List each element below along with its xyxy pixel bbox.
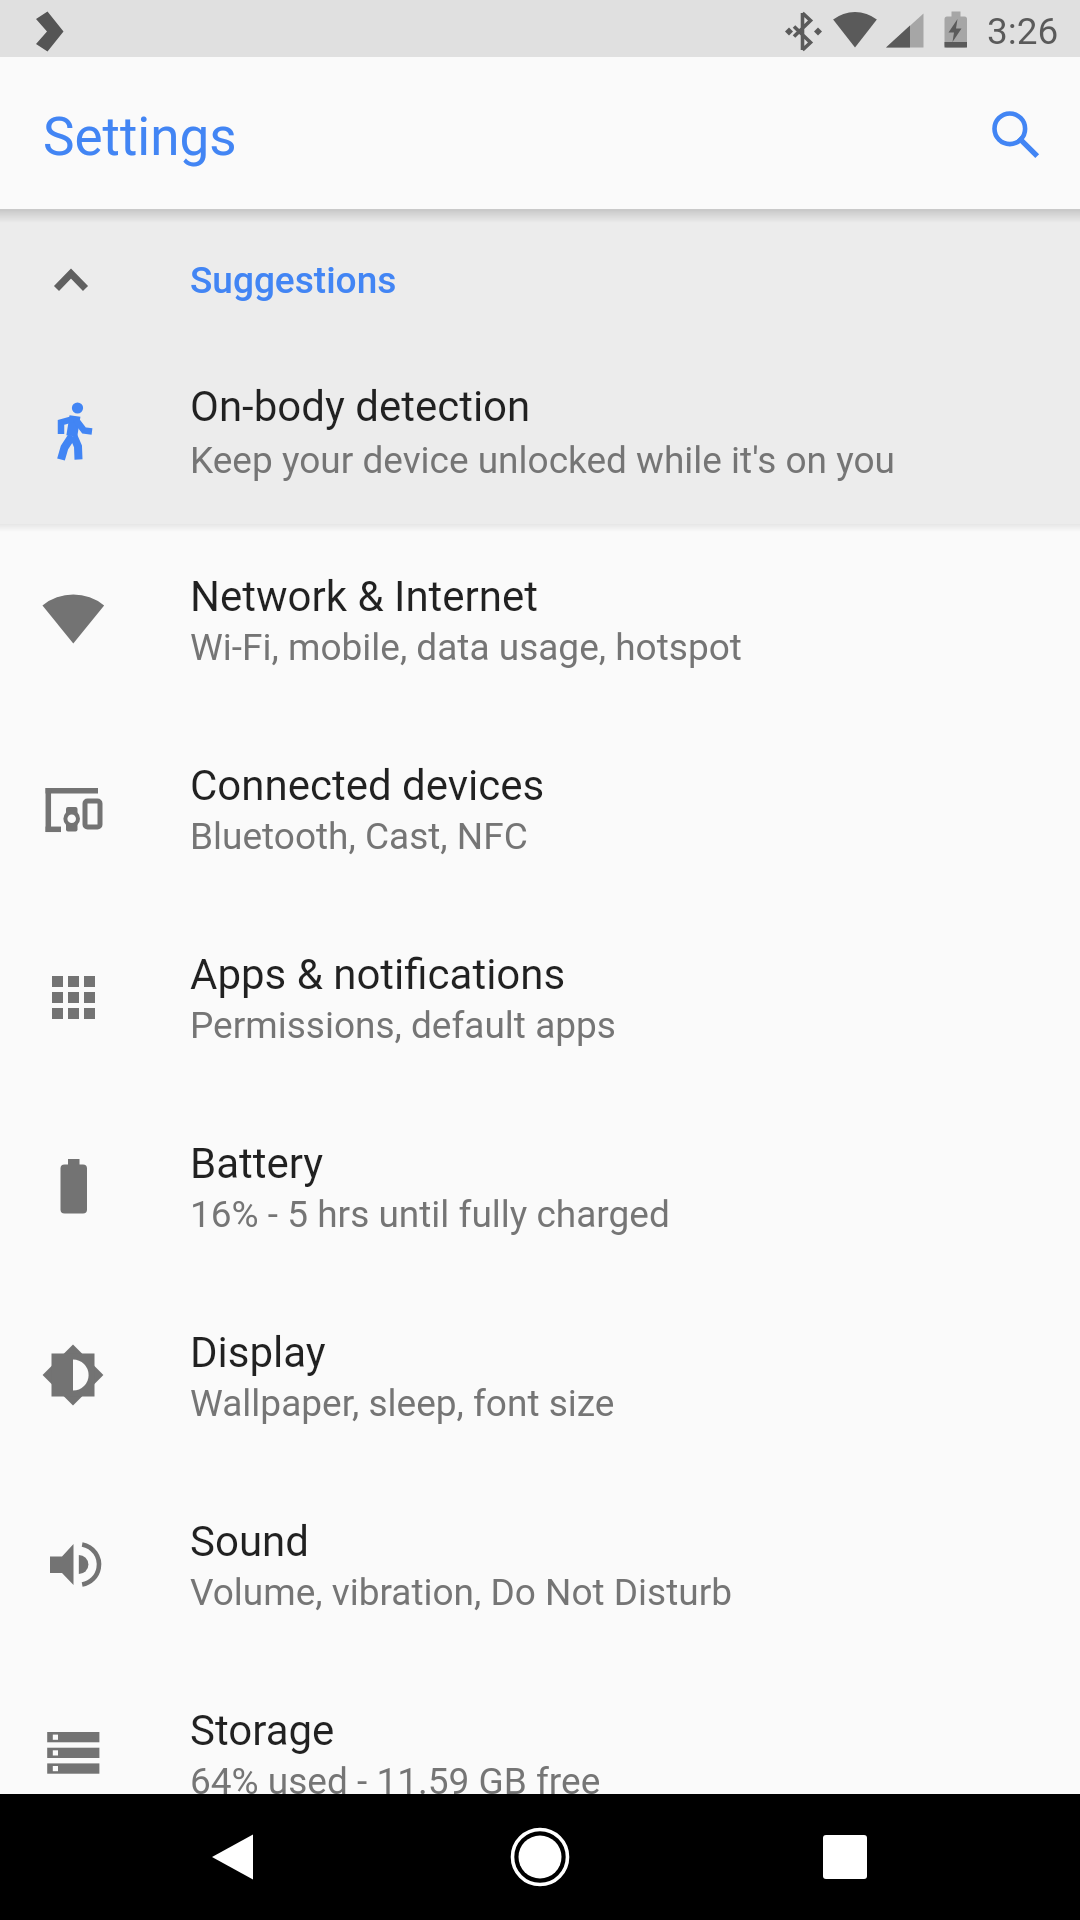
staticText: Display — [190, 1328, 326, 1377]
button[interactable] — [0, 1658, 1080, 1847]
button[interactable] — [0, 1280, 1080, 1469]
staticText: Wallpaper, sleep, font size — [190, 1382, 615, 1425]
button[interactable] — [0, 713, 1080, 902]
staticText: Bluetooth, Cast, NFC — [190, 815, 528, 858]
staticText: Volume, vibration, Do Not Disturb — [190, 1571, 733, 1614]
button[interactable] — [782, 1794, 908, 1920]
staticText: Connected devices — [190, 761, 545, 810]
staticText: Network & Internet — [190, 572, 539, 621]
staticText: 3:26 — [987, 10, 1059, 53]
button[interactable] — [0, 902, 1080, 1091]
staticText: Wi-Fi, mobile, data usage, hotspot — [190, 626, 742, 669]
staticText: Permissions, default apps — [190, 1004, 616, 1047]
staticText: Settings — [43, 106, 237, 168]
staticText: Battery — [190, 1139, 324, 1188]
staticText: Sound — [190, 1517, 309, 1566]
button[interactable] — [170, 1794, 296, 1920]
button[interactable] — [0, 336, 1080, 524]
staticText: 64% used - 11.59 GB free — [190, 1760, 601, 1803]
staticText: 16% - 5 hrs until fully charged — [190, 1193, 670, 1236]
button[interactable] — [0, 524, 1080, 713]
staticText: Keep your device unlocked while it's on … — [190, 439, 895, 482]
staticText: On-body detection — [190, 382, 531, 431]
button[interactable] — [0, 1469, 1080, 1658]
button[interactable] — [477, 1794, 603, 1920]
staticText: Suggestions — [190, 259, 397, 302]
button[interactable] — [0, 1091, 1080, 1280]
button[interactable] — [966, 85, 1054, 173]
staticText: Storage — [190, 1706, 335, 1755]
button[interactable] — [0, 240, 1080, 324]
staticText: Apps & notifications — [190, 950, 566, 999]
